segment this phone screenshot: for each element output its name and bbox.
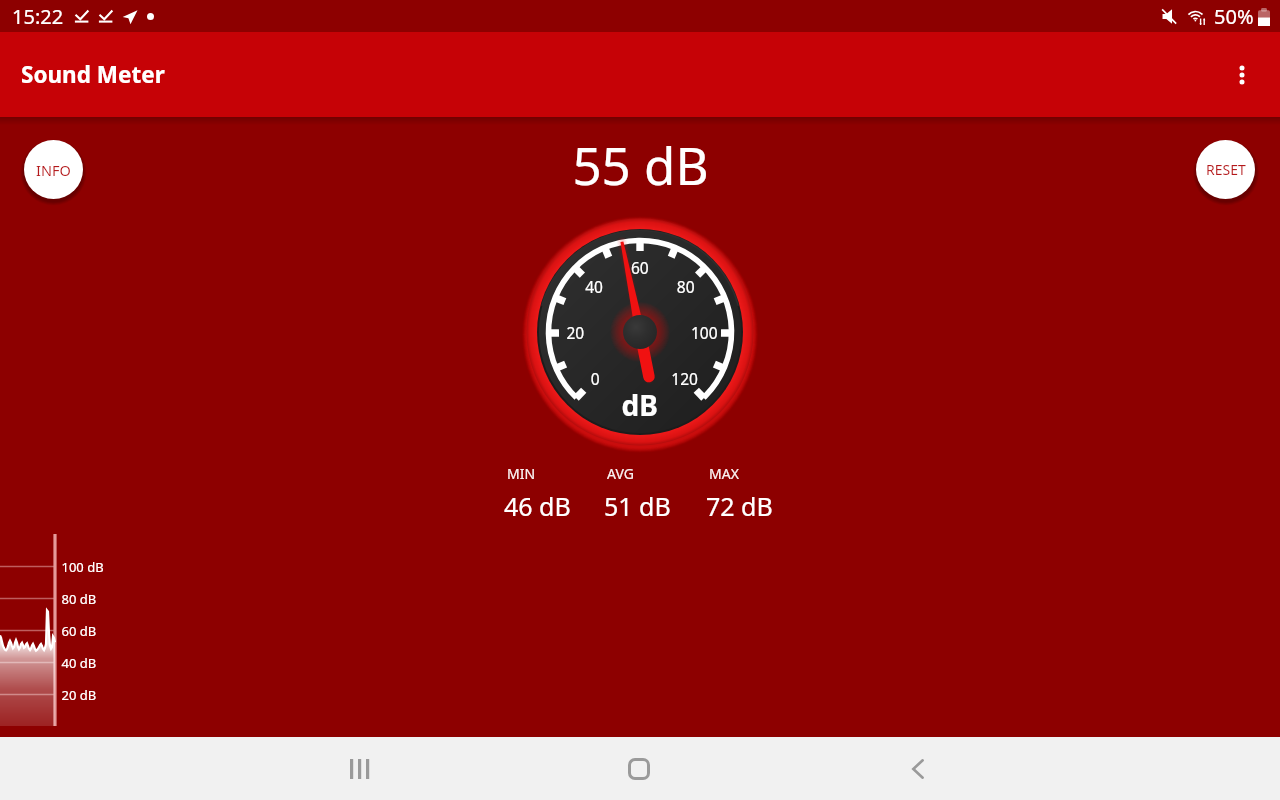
staticText: AVG	[607, 464, 634, 483]
staticText: MIN	[507, 464, 536, 483]
staticText: 15:22	[12, 3, 64, 30]
staticText: 55 dB	[572, 130, 709, 199]
button[interactable]: Back	[878, 737, 958, 800]
button[interactable]: Home	[599, 737, 679, 800]
button[interactable]: Recents	[318, 737, 398, 800]
staticText: INFO	[36, 160, 71, 180]
staticText: 72 dB	[706, 489, 773, 523]
button[interactable]: RESET	[1196, 140, 1255, 199]
staticText: 51 dB	[604, 489, 671, 523]
button[interactable]: More options	[1218, 51, 1266, 99]
staticText: MAX	[709, 464, 739, 483]
staticText: 46 dB	[504, 489, 571, 523]
button[interactable]: INFO	[24, 140, 83, 199]
staticText: Sound Meter	[21, 59, 165, 90]
staticText: RESET	[1206, 160, 1246, 179]
staticText: 50%	[1214, 3, 1254, 30]
